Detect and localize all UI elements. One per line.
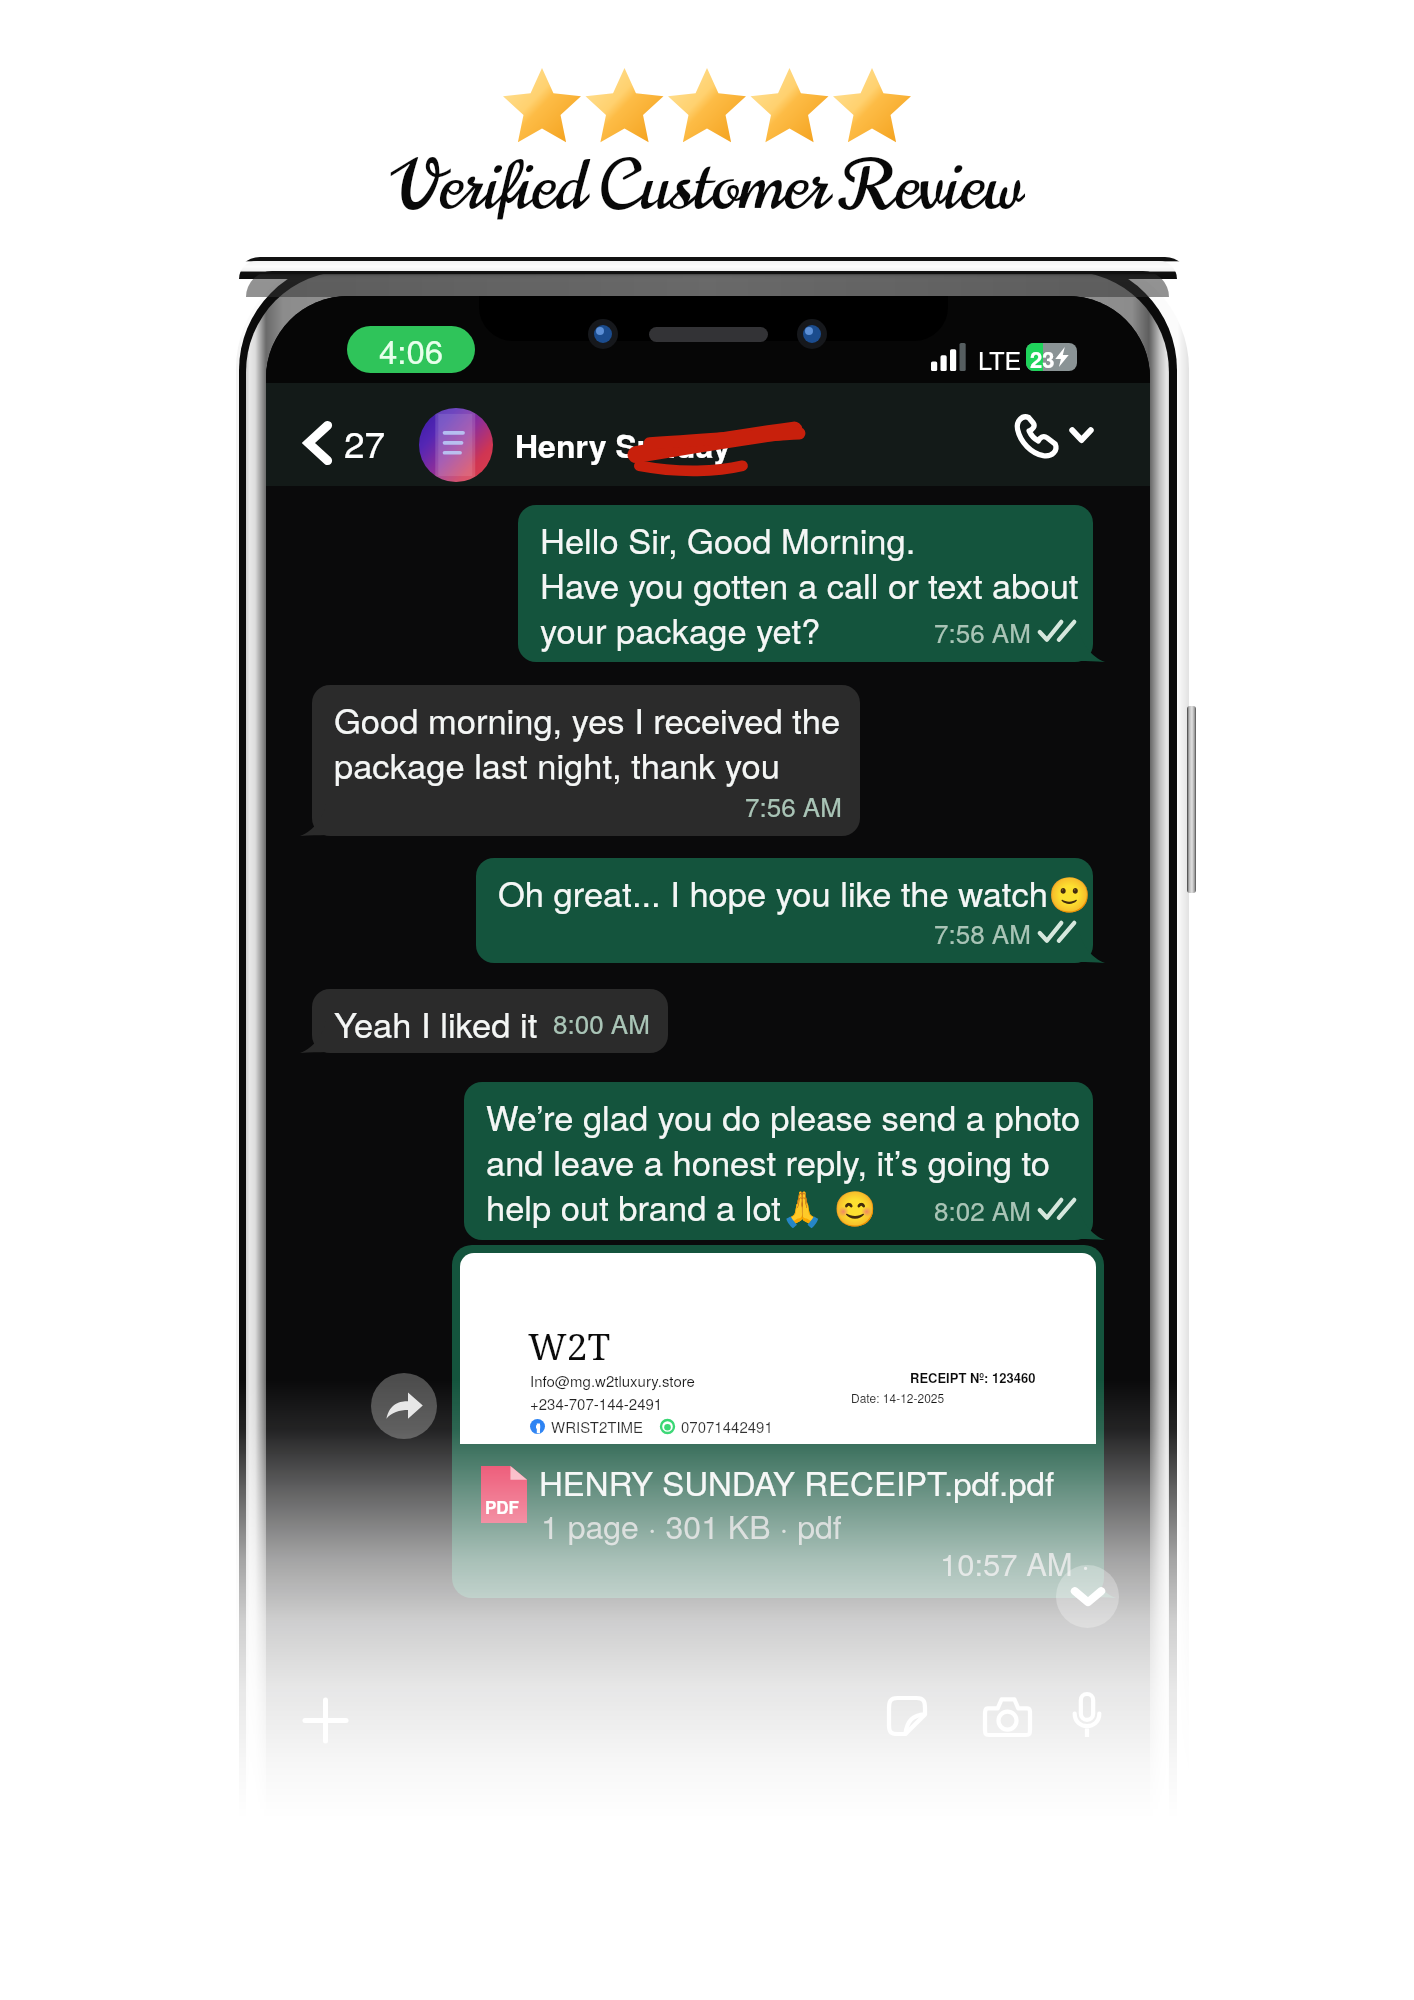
staticText: PDF [485,1495,519,1519]
staticText: 7:56 AM [745,787,842,824]
staticText: Hello Sir, Good Morning. Have you gotten… [540,514,1079,654]
staticText: LTE [978,341,1022,377]
staticText: We’re glad you do please send a photo an… [486,1091,1081,1231]
button[interactable] [476,858,1093,963]
staticText: HENRY SUNDAY RECEIPT.pdf.pdf [539,1458,1055,1505]
staticText: Date: 14-12-2025 [851,1389,945,1406]
button[interactable]: Stickers [887,1696,927,1736]
staticText: 10:57 AM · [940,1540,1090,1584]
button[interactable] [464,1082,1093,1240]
button[interactable]: Attach [305,1700,346,1741]
staticText: 27 [344,416,386,469]
button[interactable]: Forward [371,1373,437,1439]
button[interactable] [452,1245,1104,1598]
staticText: RECEIPT Nº: 123460 [910,1368,1036,1387]
button[interactable] [312,989,668,1053]
staticText: 8:00 AM [553,1004,650,1041]
button[interactable]: Scroll to bottom [1056,1565,1119,1628]
button[interactable] [518,505,1093,662]
staticText: +234-707-144-2491 [530,1393,663,1414]
staticText: 1 page · 301 KB · pdf [541,1502,842,1548]
staticText: Henry Sunday [515,422,731,468]
staticText: Verified Customer Review [0,139,1414,233]
button[interactable]: Henry Sunday [419,408,731,482]
staticText: WRIST2TIME [551,1416,644,1437]
staticText: Yeah I liked it [334,998,538,1047]
staticText: Oh great... I hope you like the watch🙂 [498,867,1091,916]
button[interactable]: Voice call [1005,404,1100,466]
button[interactable]: Camera [983,1696,1032,1737]
staticText: 23 [1030,343,1055,371]
staticText: 07071442491 [681,1416,773,1437]
button[interactable]: Voice message [1073,1692,1101,1740]
staticText: 8:02 AM [934,1191,1031,1228]
staticText: Info@mg.w2tluxury.store [530,1370,695,1391]
staticText: 7:56 AM [934,613,1031,650]
staticText: W2T [528,1320,611,1370]
staticText: 4:06 [379,326,444,373]
staticText: 7:58 AM [934,914,1031,951]
button[interactable]: Back, 27 unread [298,406,394,479]
button[interactable] [312,685,860,836]
staticText: Good morning, yes I received the package… [334,694,841,789]
